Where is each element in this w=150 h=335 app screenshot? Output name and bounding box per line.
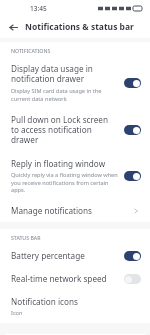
staticText: Display SIM card data usage in the curre… xyxy=(11,87,118,102)
staticText: Display data usage in notification drawe… xyxy=(11,63,118,85)
button[interactable]: Toggle on xyxy=(124,251,141,261)
staticText: Notification icons xyxy=(11,296,78,307)
button[interactable]: Real-time network speed xyxy=(0,267,150,290)
button[interactable]: Toggle on xyxy=(124,78,141,88)
button[interactable]: Back xyxy=(5,19,21,35)
staticText: Reply in floating window xyxy=(11,158,106,169)
button[interactable]: Display data usage in notification drawe… xyxy=(0,57,150,108)
staticText: Manage notifications xyxy=(11,205,92,216)
staticText: 13:45 xyxy=(30,4,47,13)
button[interactable]: Toggle on xyxy=(124,125,141,135)
button[interactable]: Notification icons xyxy=(0,290,150,323)
staticText: Quickly reply via a floating window when… xyxy=(11,171,118,193)
staticText: Real-time network speed xyxy=(11,273,107,284)
button[interactable]: Pull down on Lock screen to access notif… xyxy=(0,108,150,152)
staticText: Pull down on Lock screen to access notif… xyxy=(11,114,118,146)
button[interactable]: Battery percentage xyxy=(0,244,150,267)
staticText: Battery percentage xyxy=(11,250,85,261)
staticText: NOTIFICATIONS xyxy=(11,47,51,54)
staticText: Notifications & status bar xyxy=(25,21,134,33)
staticText: Icon xyxy=(11,309,23,317)
button[interactable]: Toggle on xyxy=(124,171,141,181)
button[interactable]: Toggle off xyxy=(124,274,141,284)
staticText: STATUS BAR xyxy=(11,234,41,241)
button[interactable]: Reply in floating window xyxy=(0,152,150,199)
button[interactable]: Manage notifications xyxy=(0,199,150,222)
